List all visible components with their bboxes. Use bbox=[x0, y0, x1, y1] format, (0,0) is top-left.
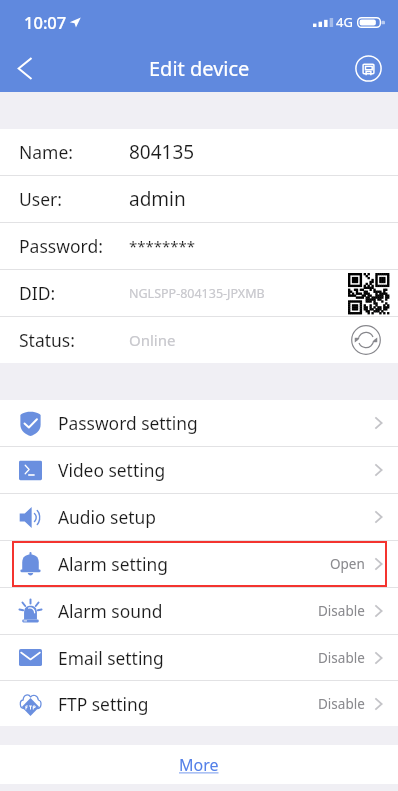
staticText: User: bbox=[19, 187, 62, 211]
staticText: FTP setting bbox=[58, 692, 149, 716]
button[interactable]: Alarm sound bbox=[0, 588, 398, 634]
staticText: Disable bbox=[318, 695, 365, 713]
staticText: Open bbox=[330, 555, 365, 573]
staticText: More bbox=[179, 754, 219, 776]
button[interactable]: Refresh bbox=[345, 320, 386, 361]
staticText: Password: bbox=[19, 234, 103, 258]
staticText: admin bbox=[129, 186, 186, 212]
staticText: ******** bbox=[129, 236, 196, 256]
button[interactable]: Audio setup bbox=[0, 494, 398, 540]
staticText: Video setting bbox=[58, 458, 166, 482]
staticText: Password setting bbox=[58, 411, 198, 435]
button[interactable]: Email setting bbox=[0, 635, 398, 680]
staticText: Alarm sound bbox=[58, 599, 163, 623]
staticText: Status: bbox=[19, 328, 75, 352]
button[interactable]: User: bbox=[0, 176, 398, 222]
button[interactable]: Back bbox=[0, 44, 48, 92]
button[interactable]: Save bbox=[338, 44, 398, 92]
staticText: Audio setup bbox=[58, 505, 156, 529]
staticText: Email setting bbox=[58, 646, 164, 670]
button[interactable]: FTP setting bbox=[0, 681, 398, 726]
staticText: DID: bbox=[19, 281, 56, 305]
button[interactable]: Video setting bbox=[0, 447, 398, 493]
button[interactable]: More bbox=[0, 745, 398, 784]
staticText: 10:07 bbox=[24, 11, 67, 33]
button[interactable]: Password: bbox=[0, 223, 398, 269]
staticText: Online bbox=[129, 330, 176, 350]
staticText: NGLSPP-804135-JPXMB bbox=[129, 285, 265, 302]
button[interactable]: Alarm setting bbox=[0, 541, 398, 587]
staticText: 4G bbox=[336, 13, 353, 31]
staticText: Name: bbox=[19, 140, 74, 164]
button[interactable]: DID: bbox=[0, 270, 398, 316]
staticText: Edit device bbox=[149, 55, 250, 82]
staticText: Disable bbox=[318, 602, 365, 620]
staticText: Alarm setting bbox=[58, 552, 168, 576]
staticText: 804135 bbox=[129, 139, 195, 165]
button[interactable]: Status: bbox=[0, 317, 398, 363]
button[interactable]: Name: bbox=[0, 129, 398, 175]
staticText: Disable bbox=[318, 649, 365, 667]
button[interactable]: Password setting bbox=[0, 400, 398, 446]
